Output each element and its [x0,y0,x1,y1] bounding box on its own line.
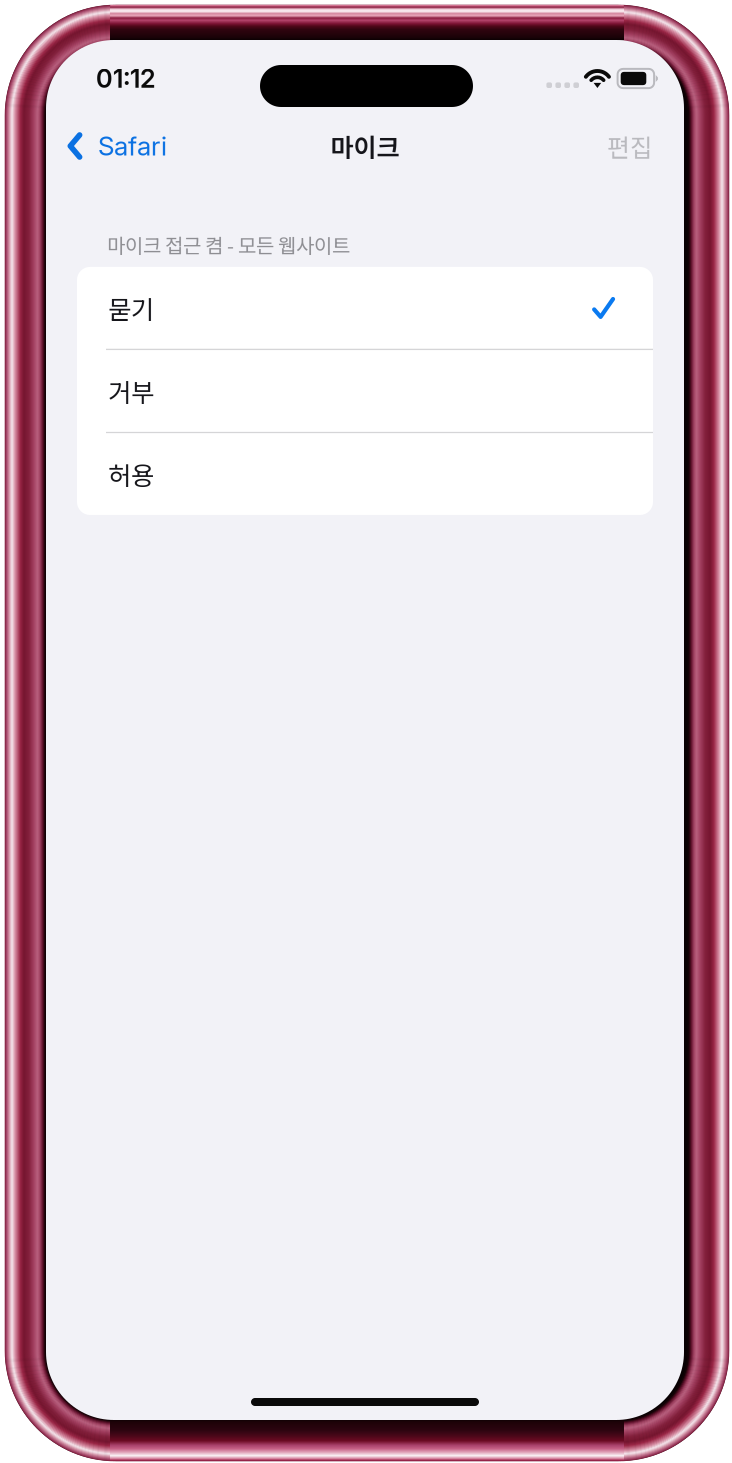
staticText: 편집 [607,128,653,164]
staticText: 01:12 [96,63,156,94]
staticText: Safari [98,130,167,162]
staticText: 허용 [108,456,154,492]
button[interactable]: 편집 [607,118,684,174]
button[interactable]: 거부 [77,350,653,432]
staticText: 거부 [108,373,154,409]
button[interactable]: 허용 [77,433,653,515]
staticText: 마이크 접근 켬 - 모든 웹사이트 [107,230,350,259]
button[interactable]: Safari [46,120,167,172]
button[interactable]: 묻기 [77,267,653,349]
staticText: 마이크 [330,128,399,164]
staticText: 묻기 [108,289,154,326]
